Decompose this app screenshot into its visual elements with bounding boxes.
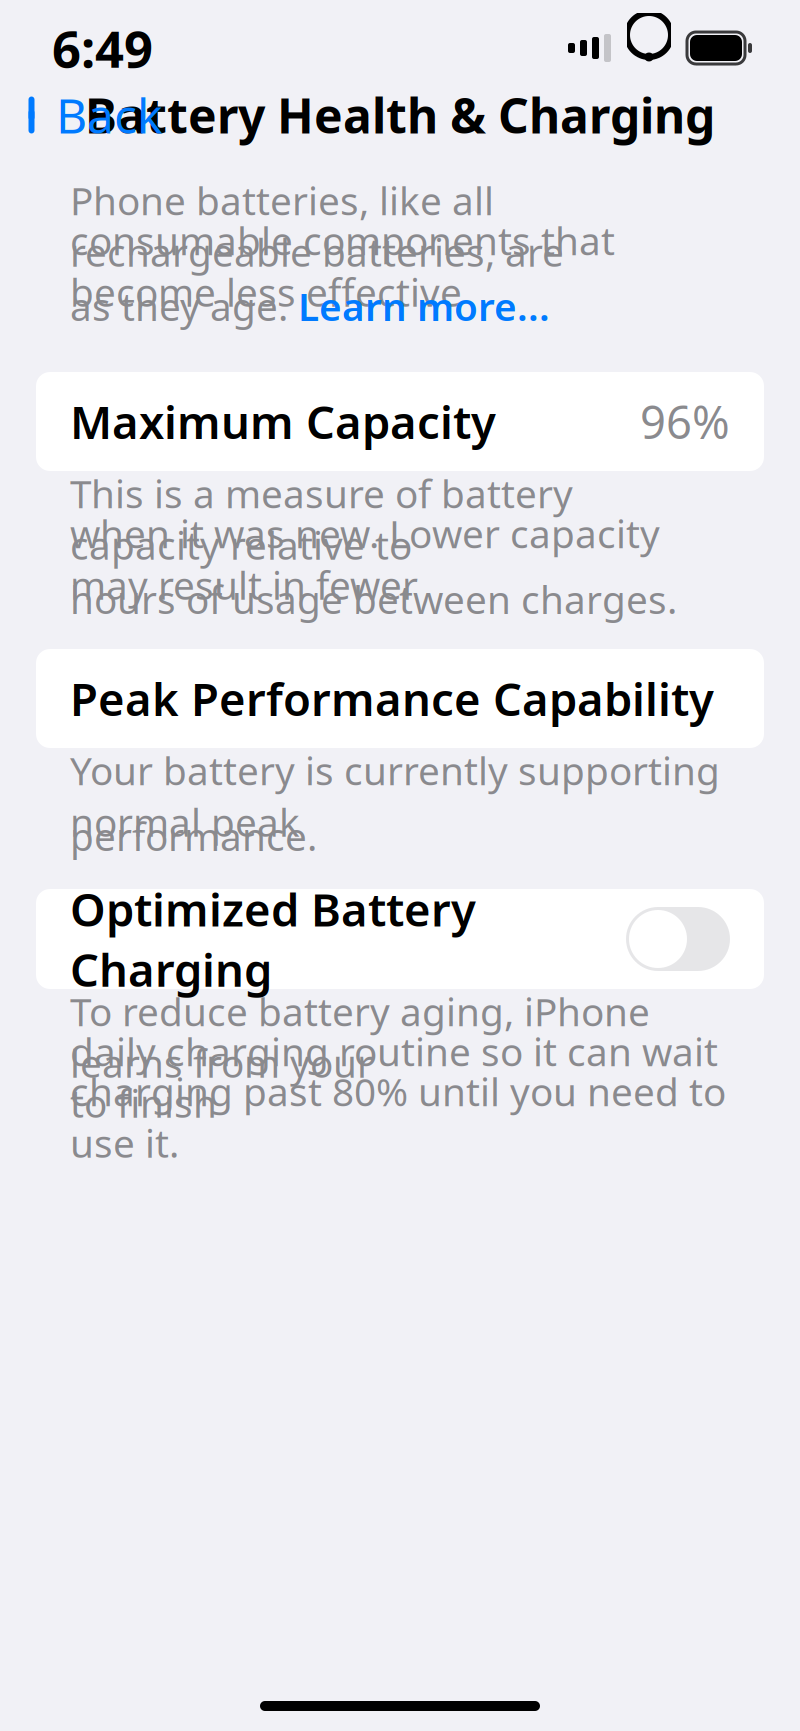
staticText: To reduce battery aging, iPhone learns f… — [70, 986, 650, 1088]
staticText: consumable components that become less e… — [70, 215, 615, 317]
staticText: when it was new. Lower capacity may resu… — [70, 508, 660, 610]
staticText: Battery Health & Charging — [85, 83, 715, 147]
staticText: daily charging routine so it can wait to… — [70, 1026, 718, 1128]
staticText: 6:49 — [52, 14, 153, 82]
button[interactable]: Optimized Battery Charging — [626, 907, 730, 971]
staticText: Phone batteries, like all rechargeable b… — [70, 175, 564, 277]
staticText: Maximum Capacity — [70, 391, 496, 452]
staticText: Optimized Battery Charging — [70, 879, 476, 999]
staticText: 96% — [640, 391, 730, 452]
staticText: Your battery is currently supporting nor… — [70, 745, 720, 847]
staticText: Learn more... — [298, 280, 550, 332]
button[interactable]: Back — [0, 71, 163, 159]
staticText: Back — [56, 83, 163, 147]
staticText: This is a measure of battery capacity re… — [70, 468, 573, 570]
staticText: charging past 80% until you need to use … — [70, 1066, 726, 1168]
staticText: hours of usage between charges. — [70, 573, 677, 625]
staticText: as they age. — [70, 280, 298, 332]
button[interactable]: Peak Performance Capability — [36, 649, 764, 748]
button[interactable]: Learn more... — [298, 280, 550, 332]
staticText: Peak Performance Capability — [70, 668, 714, 729]
button[interactable]: Maximum Capacity — [36, 372, 764, 471]
staticText: performance. — [70, 810, 317, 862]
